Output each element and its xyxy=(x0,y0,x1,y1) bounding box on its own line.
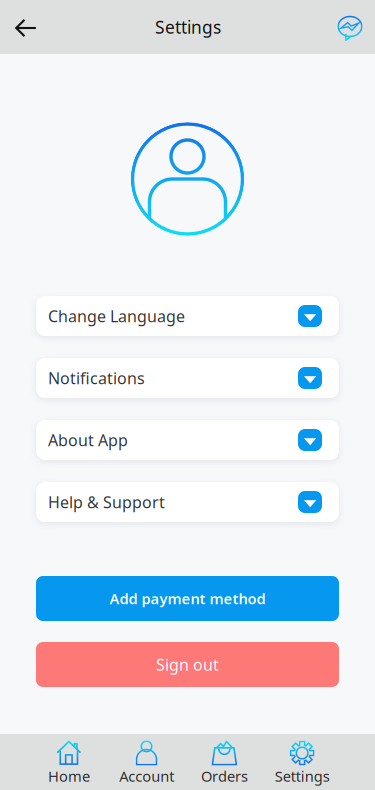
button[interactable]: Orders xyxy=(185,740,263,783)
staticText: Help & Support xyxy=(48,491,165,513)
button[interactable]: About App xyxy=(36,420,339,460)
staticText: Orders xyxy=(201,766,248,786)
button[interactable]: Home xyxy=(30,740,108,783)
staticText: Change Language xyxy=(48,305,185,327)
button[interactable]: Settings xyxy=(263,740,341,783)
staticText: Settings xyxy=(275,766,330,786)
button[interactable]: Help & Support xyxy=(36,482,339,522)
button[interactable]: Change Language xyxy=(36,296,339,336)
button[interactable]: Add payment method xyxy=(36,576,339,621)
button[interactable]: Account xyxy=(108,740,186,783)
staticText: Add payment method xyxy=(109,589,265,608)
staticText: About App xyxy=(48,429,128,451)
button[interactable]: Sign out xyxy=(36,642,339,687)
staticText: Sign out xyxy=(156,654,219,675)
staticText: Home xyxy=(48,766,90,786)
button[interactable]: Notifications xyxy=(36,358,339,398)
button[interactable]: Messages xyxy=(329,5,371,49)
button[interactable]: Back xyxy=(5,5,47,49)
staticText: Notifications xyxy=(48,367,145,389)
staticText: Account xyxy=(119,766,174,786)
staticText: Settings xyxy=(155,15,221,38)
